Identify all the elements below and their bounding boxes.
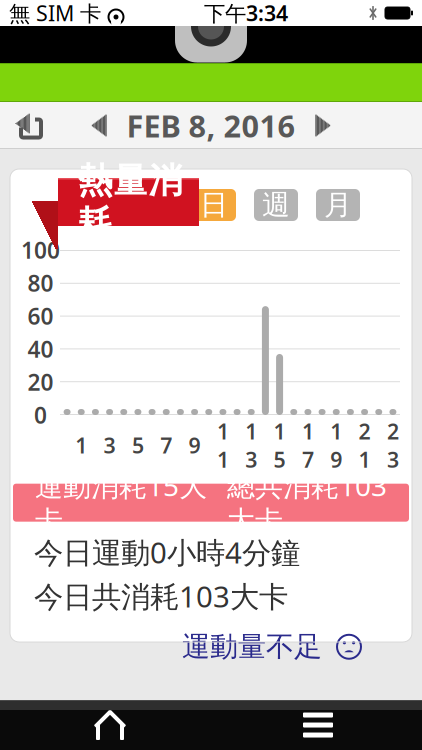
staticText: 7 — [160, 431, 172, 459]
staticText: 1 — [75, 431, 87, 459]
staticText: 80 — [27, 268, 53, 298]
staticText: 週 — [262, 188, 290, 222]
staticText: 17 — [302, 417, 314, 474]
staticText: 無 SIM 卡 — [9, 0, 101, 27]
staticText: 40 — [27, 334, 53, 364]
staticText: 20 — [27, 367, 53, 397]
button[interactable]: 月 — [316, 189, 360, 221]
button[interactable]: Previous day — [86, 108, 112, 142]
staticText: 總共消耗103大卡 — [227, 467, 387, 538]
staticText: 今日共消耗103大卡 — [34, 577, 288, 616]
button[interactable]: Next day — [309, 108, 335, 142]
staticText: 11 — [217, 417, 229, 474]
staticText: 19 — [330, 417, 342, 474]
staticText: 今日運動0小時4分鐘 — [34, 533, 300, 572]
staticText: 60 — [27, 301, 53, 331]
staticText: FEB 8, 2016 — [126, 105, 295, 146]
button[interactable]: 週 — [254, 189, 298, 221]
staticText: 運動消耗15大卡 — [35, 467, 207, 538]
staticText: 21 — [359, 417, 371, 474]
staticText: 熱量消耗 — [78, 159, 183, 245]
staticText: 日 — [200, 188, 228, 222]
button[interactable]: Menu — [286, 700, 350, 750]
staticText: 5 — [132, 431, 144, 459]
button[interactable]: Back — [0, 102, 56, 149]
staticText: 下午3:34 — [204, 0, 288, 27]
staticText: 0 — [34, 400, 47, 430]
button[interactable]: 日 — [192, 189, 236, 221]
staticText: 23 — [387, 417, 399, 474]
staticText: 15 — [274, 417, 286, 474]
button[interactable]: Home — [78, 700, 142, 750]
staticText: 運動量不足 — [182, 630, 322, 664]
staticText: 13 — [245, 417, 257, 474]
staticText: 月 — [324, 188, 352, 222]
staticText: 100 — [21, 235, 60, 265]
staticText: 9 — [189, 431, 201, 459]
staticText: 3 — [104, 431, 116, 459]
